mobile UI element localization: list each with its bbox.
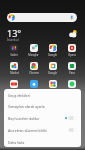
button[interactable]: Boş hücreleri doldur	[4, 112, 81, 124]
button[interactable]: Market	[4, 62, 24, 75]
staticText: Daha fazla	[8, 140, 25, 144]
button[interactable]: Varsayılan olarak ayarla	[4, 100, 81, 112]
staticText: Varsayılan olarak ayarla	[8, 104, 45, 108]
staticText: 13°	[7, 27, 22, 39]
staticText: Galeri	[10, 53, 18, 57]
staticText: Geçiş efektleri	[8, 93, 30, 97]
staticText: Ana ekran düzenini kilitle	[8, 128, 47, 132]
button[interactable]: YouTube	[4, 80, 24, 93]
button[interactable]: Dosyalar	[43, 80, 62, 93]
button[interactable]: WhatsApp	[62, 80, 81, 93]
button[interactable]: Galeri	[4, 44, 24, 57]
staticText: İstanbul	[7, 38, 19, 42]
staticText: Para	[69, 71, 75, 75]
staticText: Market	[10, 71, 19, 75]
button[interactable]: Kamera	[24, 80, 43, 93]
staticText: Chrome	[29, 71, 39, 75]
button[interactable]: Google	[43, 62, 62, 75]
staticText: Boş hücreleri doldur	[8, 116, 40, 120]
staticText: Google	[48, 71, 57, 75]
button[interactable]: Google	[43, 44, 62, 57]
button[interactable]: Search	[7, 13, 77, 22]
button[interactable]: Mesajlar	[24, 44, 43, 57]
staticText: Google	[48, 53, 57, 57]
button[interactable]: Daha fazla	[4, 136, 81, 147]
button[interactable]: Geçiş efektleri	[4, 89, 81, 100]
button[interactable]: Opera	[62, 44, 81, 57]
button[interactable]: Ana ekran düzenini kilitle	[4, 124, 81, 136]
button[interactable]: Para	[62, 62, 81, 75]
staticText: Mesajlar	[28, 53, 39, 57]
button[interactable]: 13°	[0, 26, 85, 42]
button[interactable]: Chrome	[24, 62, 43, 75]
staticText: Opera	[68, 53, 76, 57]
